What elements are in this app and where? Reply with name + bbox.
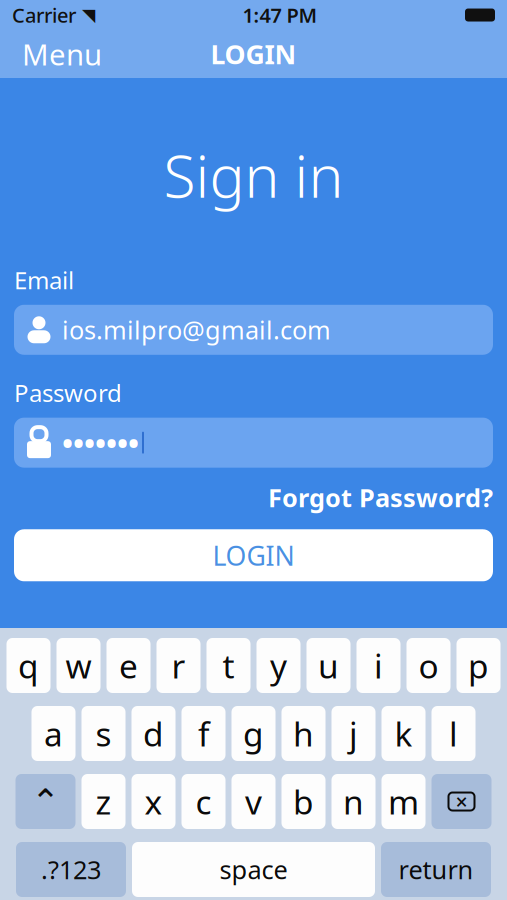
button[interactable]: z	[81, 774, 125, 829]
staticText: j	[349, 711, 358, 756]
button[interactable]: e	[106, 638, 150, 693]
staticText: ◥	[82, 5, 95, 25]
button[interactable]: g	[231, 706, 275, 761]
staticText: a	[44, 711, 63, 756]
staticText: g	[243, 711, 264, 756]
staticText: b	[293, 779, 314, 824]
button[interactable]: Shift	[15, 774, 75, 829]
button[interactable]: a	[31, 706, 75, 761]
button[interactable]: Delete	[431, 774, 491, 829]
staticText: u	[318, 643, 339, 688]
staticText: o	[418, 643, 438, 688]
staticText: q	[18, 643, 39, 688]
staticText: f	[198, 711, 209, 756]
button[interactable]: .?123	[16, 842, 126, 897]
staticText: d	[143, 711, 164, 756]
button[interactable]: u	[306, 638, 350, 693]
staticText: .?123	[41, 853, 101, 886]
button[interactable]: w	[56, 638, 100, 693]
staticText: k	[394, 711, 412, 756]
staticText: Email	[14, 264, 74, 296]
button[interactable]: space	[132, 842, 375, 897]
staticText: y	[270, 643, 287, 688]
button[interactable]: v	[231, 774, 275, 829]
staticText: return	[398, 853, 473, 886]
staticText: i	[374, 643, 383, 688]
staticText: p	[468, 643, 489, 688]
button[interactable]: l	[431, 706, 475, 761]
staticText: z	[95, 779, 111, 824]
staticText: l	[449, 711, 458, 756]
button[interactable]: Forgot Password?	[268, 477, 493, 518]
button[interactable]: s	[81, 706, 125, 761]
button[interactable]: x	[131, 774, 175, 829]
button[interactable]: y	[256, 638, 300, 693]
staticText: Sign in	[163, 136, 343, 214]
staticText: LOGIN	[212, 538, 294, 573]
button[interactable]: r	[156, 638, 200, 693]
staticText: w	[65, 643, 91, 688]
staticText: Forgot Password?	[268, 481, 493, 514]
staticText: 1:47 PM	[242, 2, 317, 28]
button[interactable]: i	[356, 638, 400, 693]
staticText: space	[219, 853, 287, 886]
staticText: ⌃	[31, 782, 60, 821]
button[interactable]: o	[406, 638, 450, 693]
button[interactable]: LOGIN	[14, 529, 493, 581]
button[interactable]: d	[131, 706, 175, 761]
staticText: v	[245, 779, 262, 824]
staticText: Password	[14, 377, 122, 409]
button[interactable]: c	[181, 774, 225, 829]
button[interactable]: k	[381, 706, 425, 761]
button[interactable]: n	[331, 774, 375, 829]
button[interactable]: h	[281, 706, 325, 761]
button[interactable]: m	[381, 774, 425, 829]
staticText: r	[171, 643, 185, 688]
staticText: h	[293, 711, 314, 756]
button[interactable]: j	[331, 706, 375, 761]
button[interactable]: t	[206, 638, 250, 693]
staticText: s	[95, 711, 111, 756]
button[interactable]: f	[181, 706, 225, 761]
staticText: ×	[455, 787, 467, 816]
staticText: c	[195, 779, 211, 824]
button[interactable]: return	[381, 842, 491, 897]
staticText: •••••••	[62, 423, 139, 462]
button[interactable]: Menu	[14, 28, 110, 79]
staticText: LOGIN	[210, 36, 296, 72]
button[interactable]: p	[456, 638, 500, 693]
button[interactable]: b	[281, 774, 325, 829]
staticText: Menu	[22, 34, 102, 73]
staticText: Carrier	[12, 2, 76, 28]
button[interactable]: q	[6, 638, 50, 693]
staticText: n	[343, 779, 364, 824]
staticText: m	[388, 779, 419, 824]
staticText: e	[119, 643, 138, 688]
staticText: x	[144, 779, 162, 824]
staticText: t	[222, 643, 234, 688]
staticText: ios.milpro@gmail.com	[62, 313, 331, 347]
